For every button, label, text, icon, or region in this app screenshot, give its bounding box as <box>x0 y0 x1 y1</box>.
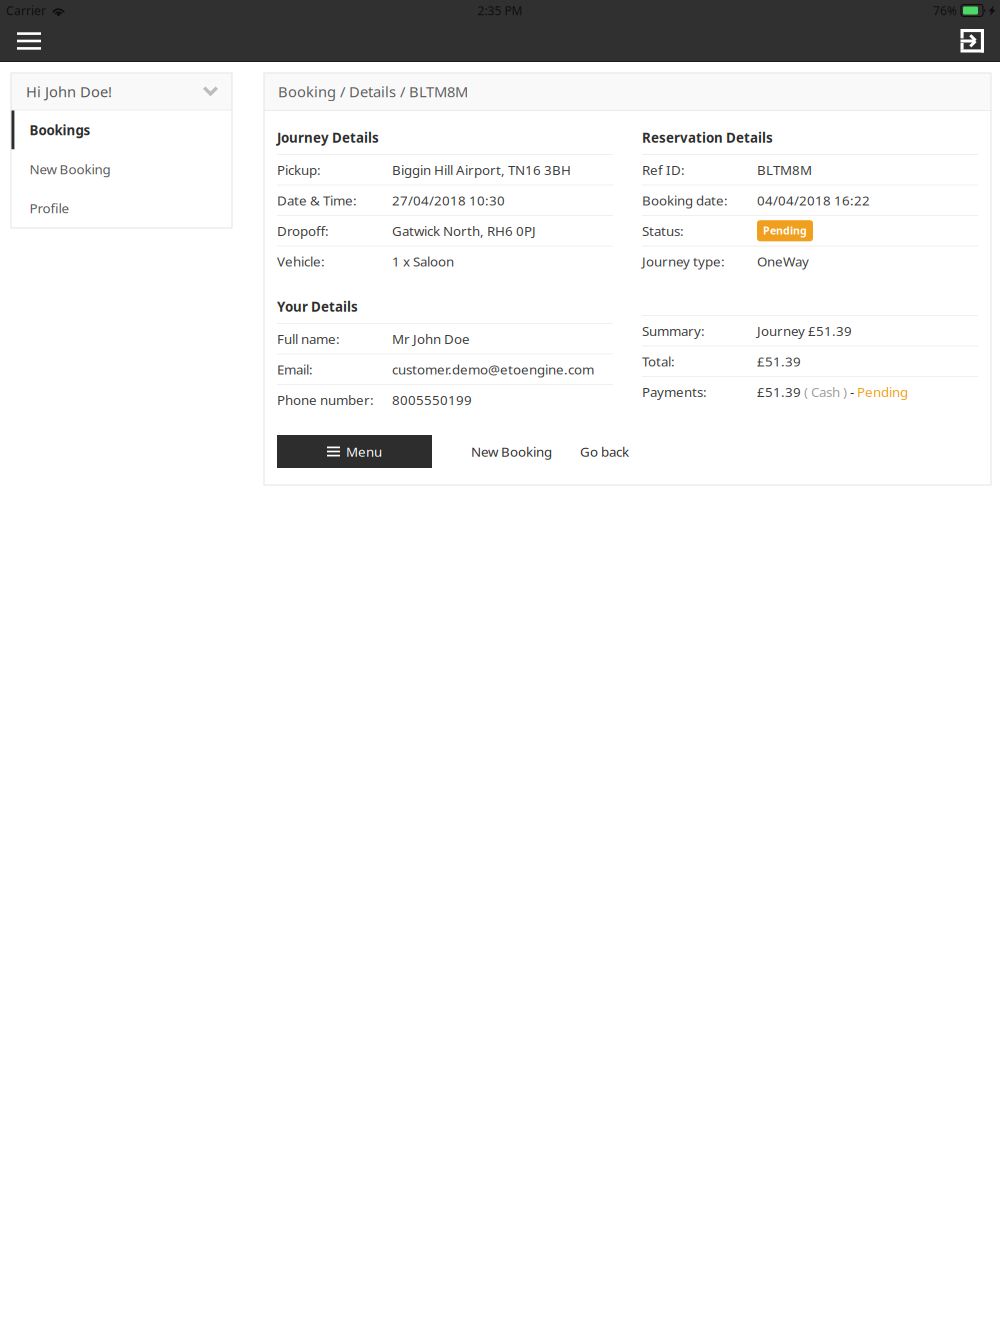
staticText: customer.demo@etoengine.com <box>392 360 594 378</box>
staticText: Your Details <box>277 298 358 315</box>
staticText: Pickup: <box>277 161 321 179</box>
staticText: Mr John Doe <box>392 330 470 348</box>
button[interactable]: Go back <box>564 435 643 468</box>
staticText: Payments: <box>642 383 707 401</box>
button[interactable]: Menu <box>5 21 53 61</box>
staticText: 04/04/2018 16:22 <box>757 191 870 209</box>
staticText: Ref ID: <box>642 161 685 179</box>
staticText: 27/04/2018 10:30 <box>392 191 505 209</box>
staticText: Booking / Details / BLTM8M <box>278 82 468 101</box>
button[interactable]: Bookings <box>11 110 232 149</box>
button[interactable]: New Booking <box>11 149 232 188</box>
staticText: Booking date: <box>642 191 728 209</box>
staticText: Profile <box>29 199 69 217</box>
staticText: Full name: <box>277 330 340 348</box>
staticText: Date & Time: <box>277 191 357 209</box>
button[interactable]: Hi John Doe! <box>11 73 232 109</box>
staticText: New Booking <box>471 443 552 460</box>
staticText: Email: <box>277 360 313 378</box>
staticText: Journey Details <box>277 129 379 146</box>
staticText: 8005550199 <box>392 391 472 409</box>
staticText: Menu <box>346 443 382 460</box>
staticText: Pending <box>857 383 908 401</box>
staticText: Total: <box>642 352 675 370</box>
staticText: Journey £51.39 <box>757 322 852 340</box>
staticText: 76% <box>933 2 957 18</box>
staticText: New Booking <box>29 160 110 178</box>
button[interactable]: Menu <box>277 435 432 468</box>
staticText: Go back <box>580 443 629 460</box>
staticText: Hi John Doe! <box>26 82 112 101</box>
staticText: Bookings <box>29 121 90 139</box>
staticText: - <box>847 383 857 401</box>
staticText: BLTM8M <box>757 161 812 179</box>
staticText: £51.39 <box>757 352 801 370</box>
staticText: OneWay <box>757 252 809 270</box>
staticText: Gatwick North, RH6 0PJ <box>392 222 536 240</box>
staticText: 1 x Saloon <box>392 252 454 270</box>
staticText: Carrier <box>6 2 46 18</box>
button[interactable]: Sign out <box>948 21 996 61</box>
staticText: ( Cash ) <box>804 383 847 401</box>
button[interactable]: Profile <box>11 188 232 227</box>
staticText: Summary: <box>642 322 705 340</box>
staticText: Biggin Hill Airport, TN16 3BH <box>392 161 571 179</box>
staticText: Reservation Details <box>642 129 773 146</box>
staticText: Dropoff: <box>277 222 329 240</box>
staticText: Vehicle: <box>277 252 325 270</box>
staticText: Journey type: <box>642 252 725 270</box>
staticText: £51.39 <box>757 383 804 401</box>
staticText: Pending <box>763 223 807 237</box>
staticText: Phone number: <box>277 391 374 409</box>
button[interactable]: New Booking <box>432 435 564 468</box>
staticText: 2:35 PM <box>477 2 522 18</box>
staticText: Status: <box>642 222 684 240</box>
